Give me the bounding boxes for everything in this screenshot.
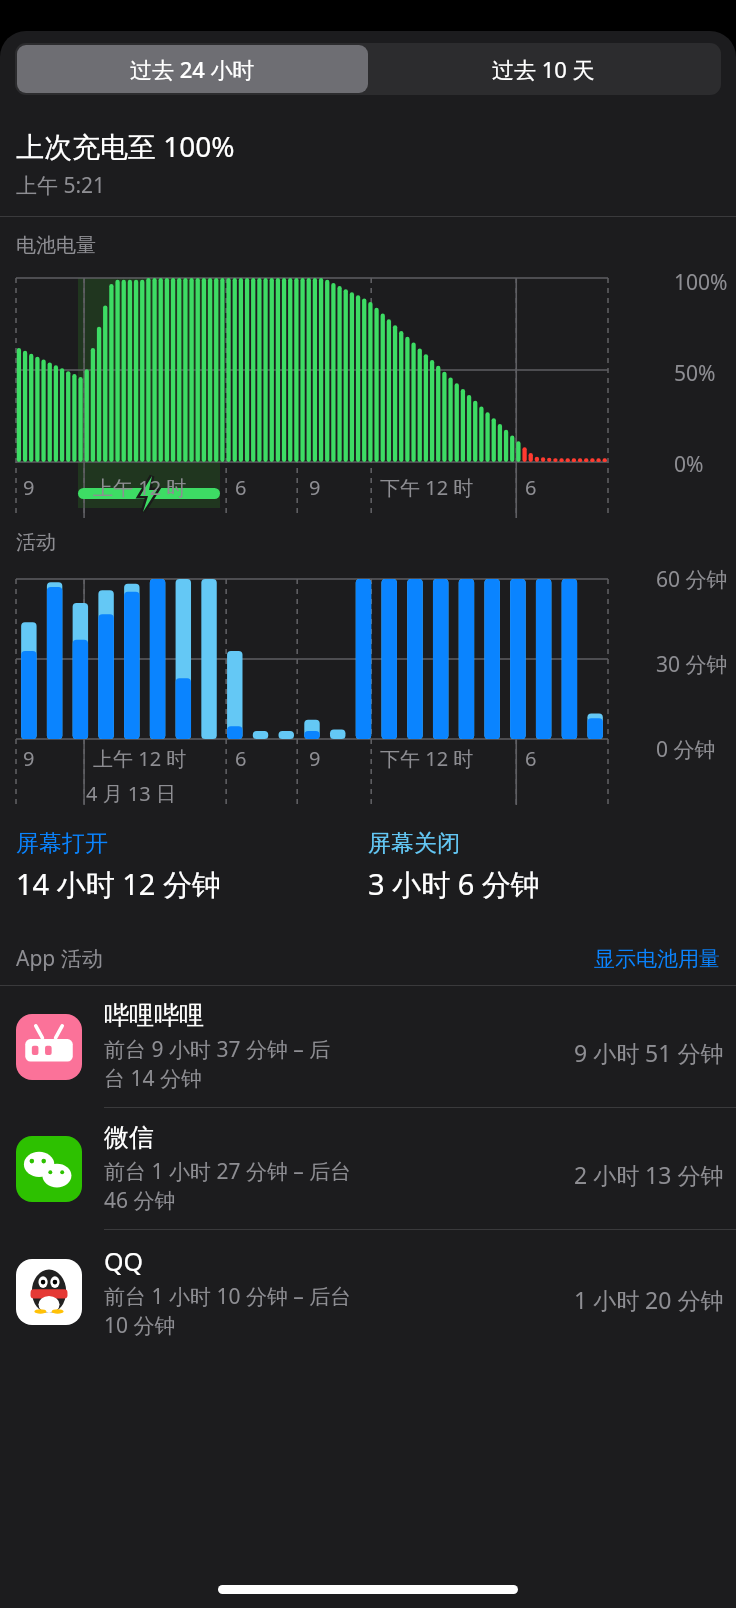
button[interactable]: 过去 24 小时 <box>17 45 368 93</box>
staticText: 9 <box>309 474 321 501</box>
staticText: 4 月 13 日 <box>86 780 176 807</box>
staticText: 0 分钟 <box>656 735 716 764</box>
button[interactable]: QQ <box>0 1230 736 1354</box>
staticText: 50% <box>674 359 716 388</box>
staticText: 屏幕关闭 <box>368 829 460 858</box>
staticText: App 活动 <box>16 944 103 973</box>
staticText: 上午 12 时 <box>93 745 187 772</box>
staticText: 上次充电至 100% <box>16 127 235 165</box>
staticText: 9 <box>23 474 35 501</box>
staticText: 活动 <box>16 530 56 555</box>
staticText: 6 <box>235 474 247 501</box>
staticText: 前台 1 小时 10 分钟 – 后台 <box>104 1282 352 1311</box>
staticText: 显示电池用量 <box>594 946 720 972</box>
staticText: 9 小时 51 分钟 <box>574 1037 724 1068</box>
staticText: 上午 12 时 <box>93 474 187 501</box>
staticText: 台 14 分钟 <box>104 1064 202 1093</box>
button[interactable]: 微信 <box>0 1108 736 1229</box>
staticText: 0% <box>674 450 704 479</box>
staticText: QQ <box>104 1244 144 1278</box>
staticText: 2 小时 13 分钟 <box>574 1159 724 1190</box>
staticText: 过去 24 小时 <box>130 54 255 84</box>
staticText: 上午 5:21 <box>16 171 106 200</box>
staticText: 14 小时 12 分钟 <box>16 864 221 904</box>
staticText: 9 <box>309 745 321 772</box>
staticText: 过去 10 天 <box>492 54 595 84</box>
staticText: 前台 9 小时 37 分钟 – 后 <box>104 1035 331 1064</box>
staticText: 哔哩哔哩 <box>104 1000 204 1031</box>
staticText: 下午 12 时 <box>380 474 474 501</box>
staticText: 微信 <box>104 1122 154 1153</box>
staticText: 6 <box>235 745 247 772</box>
staticText: 60 分钟 <box>656 565 728 594</box>
staticText: 下午 12 时 <box>380 745 474 772</box>
button[interactable]: 哔哩哔哩 <box>0 986 736 1107</box>
staticText: 电池电量 <box>16 233 96 258</box>
staticText: 6 <box>525 474 537 501</box>
staticText: 前台 1 小时 27 分钟 – 后台 <box>104 1157 352 1186</box>
button[interactable]: 过去 10 天 <box>368 45 719 93</box>
button[interactable]: 显示电池用量 <box>594 946 720 972</box>
staticText: 1 小时 20 分钟 <box>574 1284 724 1315</box>
staticText: 30 分钟 <box>656 650 728 679</box>
staticText: 屏幕打开 <box>16 829 108 858</box>
staticText: 6 <box>525 745 537 772</box>
staticText: 46 分钟 <box>104 1186 176 1215</box>
staticText: 100% <box>674 268 728 297</box>
staticText: 3 小时 6 分钟 <box>368 864 540 904</box>
staticText: 9 <box>23 745 35 772</box>
staticText: 10 分钟 <box>104 1311 176 1340</box>
